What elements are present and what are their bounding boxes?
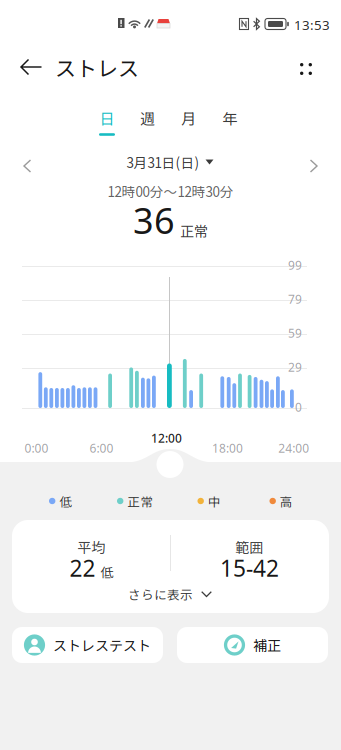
staticText: 日 — [99, 107, 114, 129]
staticText: 3月31日(日) — [126, 152, 199, 172]
button[interactable]: 年 — [210, 103, 250, 133]
staticText: 高 — [280, 492, 293, 510]
button[interactable]: 週 — [127, 103, 167, 133]
staticText: 月 — [181, 107, 196, 129]
button[interactable]: さらに表示 — [90, 582, 250, 606]
staticText: 0 — [295, 399, 302, 415]
button[interactable]: 日 — [87, 103, 127, 133]
staticText: 36 — [133, 196, 175, 244]
button[interactable]: 月 — [168, 103, 208, 133]
button[interactable]: 補正 — [177, 627, 328, 663]
staticText: 正常 — [127, 492, 153, 510]
staticText: 22 — [69, 553, 95, 583]
staticText: 0:00 — [24, 440, 48, 456]
staticText: 15-42 — [220, 553, 279, 583]
staticText: 13:53 — [294, 16, 330, 34]
staticText: 29 — [288, 359, 302, 375]
staticText: 24:00 — [278, 440, 309, 456]
staticText: 79 — [288, 291, 302, 307]
staticText: 99 — [288, 257, 302, 273]
staticText: 範囲 — [235, 537, 263, 557]
staticText: 週 — [140, 107, 155, 129]
staticText: 6:00 — [89, 440, 113, 456]
staticText: 12:00 — [151, 430, 182, 446]
button[interactable]: More options — [287, 50, 325, 88]
staticText: 年 — [222, 107, 237, 129]
staticText: 18:00 — [212, 440, 243, 456]
button[interactable]: Previous day — [11, 147, 44, 185]
staticText: 低 — [59, 492, 72, 510]
staticText: ストレス — [55, 52, 139, 82]
button[interactable]: Next day — [297, 147, 330, 185]
staticText: さらに表示 — [128, 585, 193, 603]
button[interactable]: ストレステスト — [12, 627, 163, 663]
staticText: 59 — [288, 325, 302, 341]
staticText: 低 — [100, 562, 113, 581]
staticText: 正常 — [180, 221, 208, 241]
button[interactable]: ストレス — [0, 45, 157, 89]
button[interactable]: 3月31日(日) — [105, 149, 235, 175]
staticText: 中 — [208, 492, 221, 510]
staticText: ストレステスト — [53, 635, 151, 655]
staticText: 平均 — [77, 537, 105, 557]
staticText: 補正 — [253, 635, 281, 655]
staticText: 12時00分〜12時30分 — [107, 181, 233, 201]
